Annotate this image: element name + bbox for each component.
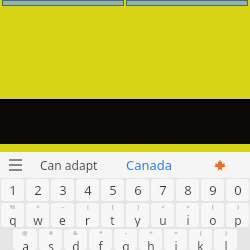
staticText: % bbox=[10, 203, 15, 211]
button[interactable]: ] bbox=[126, 203, 149, 227]
button[interactable]: @ bbox=[13, 229, 37, 250]
staticText: 0 bbox=[234, 181, 242, 199]
staticText: u bbox=[159, 212, 167, 227]
button[interactable]: + bbox=[139, 229, 162, 250]
staticText: [ bbox=[112, 203, 114, 211]
staticText: > bbox=[186, 203, 190, 211]
button[interactable]: | bbox=[76, 203, 99, 227]
staticText: 3 bbox=[59, 181, 67, 199]
button[interactable]: 8 bbox=[176, 179, 199, 201]
button[interactable]: 1 bbox=[1, 179, 24, 201]
staticText: 8 bbox=[184, 181, 192, 199]
button[interactable]: # bbox=[39, 229, 62, 250]
staticText: i bbox=[186, 212, 190, 227]
staticText: 1 bbox=[9, 181, 17, 199]
button[interactable]: < bbox=[151, 203, 174, 227]
button[interactable]: = bbox=[164, 229, 187, 250]
button[interactable]: 4 bbox=[76, 179, 99, 201]
button[interactable]: 5 bbox=[101, 179, 124, 201]
staticText: 7 bbox=[159, 181, 167, 199]
staticText: & bbox=[73, 229, 78, 237]
staticText: ) bbox=[237, 203, 239, 211]
button[interactable]: 3 bbox=[51, 179, 74, 201]
staticText: y bbox=[134, 212, 141, 227]
staticText: w bbox=[33, 212, 43, 227]
staticText: g bbox=[122, 238, 130, 250]
staticText: r bbox=[85, 212, 90, 227]
staticText: + bbox=[149, 229, 153, 237]
staticText: 9 bbox=[209, 181, 217, 199]
staticText: < bbox=[161, 203, 165, 211]
staticText: ~ bbox=[61, 203, 65, 211]
button[interactable]: Can adapt bbox=[30, 152, 108, 178]
staticText: p bbox=[234, 212, 242, 227]
button[interactable]: - bbox=[114, 229, 137, 250]
button[interactable]: ^ bbox=[26, 203, 49, 227]
staticText: l bbox=[224, 238, 228, 250]
staticText: k bbox=[197, 238, 204, 250]
button[interactable]: 7 bbox=[151, 179, 174, 201]
button[interactable]: % bbox=[1, 203, 24, 227]
button[interactable]: & bbox=[64, 229, 87, 250]
staticText: e bbox=[59, 212, 66, 227]
button[interactable]: ( bbox=[189, 229, 212, 250]
staticText: ^ bbox=[36, 203, 40, 211]
button[interactable]: Canada bbox=[108, 152, 190, 178]
staticText: Canada bbox=[126, 156, 173, 174]
staticText: # bbox=[49, 229, 53, 237]
button[interactable]: ) bbox=[226, 203, 249, 227]
button[interactable]: 9 bbox=[201, 179, 224, 201]
button[interactable]: ~ bbox=[51, 203, 74, 227]
staticText: f bbox=[98, 238, 103, 250]
staticText: o bbox=[209, 212, 217, 227]
staticText: t bbox=[110, 212, 115, 227]
staticText: | bbox=[86, 203, 90, 211]
staticText: d bbox=[72, 238, 80, 250]
staticText: Can adapt bbox=[40, 157, 98, 173]
button[interactable]: ( bbox=[201, 203, 224, 227]
staticText: s bbox=[48, 238, 54, 250]
staticText: ( bbox=[212, 203, 214, 211]
button[interactable]: 2 bbox=[26, 179, 49, 201]
button[interactable]: Maple leaf emoji bbox=[190, 152, 250, 178]
button[interactable]: 6 bbox=[126, 179, 149, 201]
staticText: 5 bbox=[109, 181, 117, 199]
staticText: a bbox=[22, 238, 29, 250]
staticText: ) bbox=[225, 229, 227, 237]
staticText: * bbox=[99, 229, 103, 237]
staticText: 2 bbox=[34, 181, 42, 199]
staticText: j bbox=[174, 238, 178, 250]
staticText: 4 bbox=[84, 181, 92, 199]
staticText: 6 bbox=[134, 181, 142, 199]
button[interactable]: Menu bbox=[0, 152, 30, 178]
button[interactable]: > bbox=[176, 203, 199, 227]
staticText: h bbox=[147, 238, 155, 250]
staticText: ] bbox=[137, 203, 139, 211]
button[interactable]: 0 bbox=[226, 179, 249, 201]
staticText: - bbox=[125, 229, 127, 237]
button[interactable]: [ bbox=[101, 203, 124, 227]
button[interactable]: * bbox=[89, 229, 112, 250]
staticText: q bbox=[9, 212, 17, 227]
staticText: ( bbox=[200, 229, 202, 237]
staticText: @ bbox=[22, 229, 28, 237]
staticText: = bbox=[174, 229, 178, 237]
button[interactable]: ) bbox=[214, 229, 237, 250]
